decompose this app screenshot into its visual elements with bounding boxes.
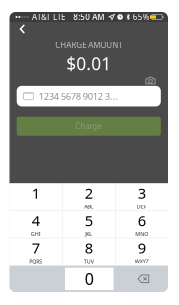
- staticText: 8: [85, 238, 93, 258]
- staticText: 1: [32, 183, 40, 203]
- button[interactable]: 4: [9, 211, 62, 238]
- staticText: 9: [138, 238, 146, 258]
- staticText: 7: [32, 238, 40, 258]
- button[interactable]: Delete: [126, 268, 161, 290]
- staticText: 3: [138, 183, 146, 203]
- staticText: 0: [85, 268, 94, 289]
- staticText: JKL: [85, 230, 92, 237]
- button[interactable]: 5: [62, 211, 115, 238]
- button[interactable]: 0: [65, 268, 113, 290]
- staticText: 4: [32, 211, 40, 230]
- staticText: DEF: [137, 203, 147, 210]
- staticText: AT&T: [32, 12, 50, 22]
- button[interactable]: 1234 5678 9012 3...: [17, 86, 161, 106]
- staticText: 8:50 AM: [73, 12, 104, 22]
- staticText: GHI: [31, 230, 41, 237]
- staticText: 1234 5678 9012 3...: [39, 90, 119, 102]
- button[interactable]: Charge: [17, 117, 161, 136]
- staticText: $0.01: [66, 52, 111, 75]
- button[interactable]: 6: [116, 211, 168, 238]
- staticText: 6: [138, 211, 146, 230]
- staticText: WXYZ: [135, 258, 149, 265]
- button[interactable]: Scan card: [143, 75, 157, 85]
- staticText: Charge: [75, 121, 102, 131]
- staticText: PQRS: [29, 258, 42, 265]
- staticText: TUV: [84, 258, 94, 265]
- button[interactable]: Back: [14, 22, 30, 36]
- staticText: 5: [85, 211, 93, 230]
- button[interactable]: 2: [62, 183, 115, 210]
- staticText: MNO: [135, 230, 148, 237]
- staticText: 65%: [133, 12, 150, 22]
- button[interactable]: 8: [62, 238, 115, 265]
- staticText: CHARGE AMOUNT: [55, 39, 122, 50]
- button[interactable]: 1: [9, 183, 62, 210]
- button[interactable]: 3: [116, 183, 168, 210]
- button[interactable]: 9: [116, 238, 168, 265]
- staticText: 2: [85, 183, 93, 203]
- staticText: ABC: [84, 203, 93, 210]
- staticText: LTE: [53, 12, 65, 22]
- button[interactable]: 7: [9, 238, 62, 265]
